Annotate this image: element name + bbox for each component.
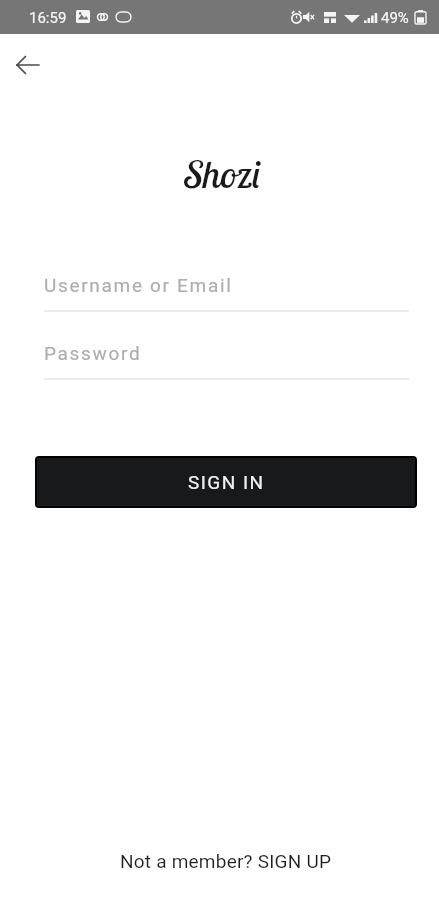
staticText: Username or Email (44, 274, 233, 296)
button[interactable]: Password (44, 342, 409, 380)
staticText: Password (44, 342, 142, 364)
button[interactable]: Username or Email (44, 274, 409, 312)
staticText: Not a member? SIGN UP (120, 850, 332, 872)
button[interactable]: SIGN IN (37, 458, 415, 506)
staticText: 49% (381, 9, 409, 27)
button[interactable]: Not a member? SIGN UP (114, 846, 338, 876)
staticText: 16:59 (29, 9, 67, 27)
staticText: Shozi (184, 150, 261, 198)
button[interactable]: Navigate back (4, 41, 52, 89)
staticText: SIGN IN (188, 471, 265, 493)
